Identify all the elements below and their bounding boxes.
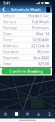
staticText: Total <box>3 61 11 66</box>
button[interactable]: Total <box>0 61 52 67</box>
button[interactable]: Date <box>0 31 52 37</box>
staticText: Visa 4242 <box>33 55 49 60</box>
staticText: Mar 14 <box>36 31 49 36</box>
staticText: 45 min <box>37 49 49 54</box>
staticText: 9:41 <box>3 0 10 6</box>
button[interactable]: Time <box>0 37 52 43</box>
button[interactable]: Offers <box>33 109 44 118</box>
staticText: Honda Civic <box>28 13 49 18</box>
button[interactable]: Book <box>11 109 22 118</box>
button[interactable]: Track <box>22 109 33 118</box>
button[interactable]: Back <box>2 7 6 12</box>
staticText: Time <box>3 37 12 42</box>
staticText: Duration <box>3 49 18 54</box>
staticText: Confirm Booking <box>9 68 43 74</box>
button[interactable]: Service <box>0 19 52 25</box>
staticText: Full Wash <box>32 19 49 24</box>
staticText: $29.00 <box>38 61 49 66</box>
staticText: Address <box>3 43 18 48</box>
button[interactable]: Duration <box>0 49 52 55</box>
staticText: Package <box>3 25 17 30</box>
button[interactable]: Payment <box>0 55 52 61</box>
staticText: Date <box>3 31 11 36</box>
staticText: Premium <box>32 25 49 30</box>
staticText: Service <box>3 19 16 24</box>
staticText: Vehicle <box>3 13 15 18</box>
button[interactable]: Vehicle <box>0 13 52 19</box>
staticText: Payment <box>3 55 18 60</box>
button[interactable]: Confirm Booking <box>2 68 51 74</box>
button[interactable]: Address <box>0 43 52 49</box>
staticText: Schedule Wash <box>11 7 41 12</box>
staticText: 221 Oak St <box>31 43 49 48</box>
button[interactable]: Profile <box>44 109 55 118</box>
button[interactable]: Home <box>0 109 11 118</box>
staticText: 10:30 AM <box>32 37 49 42</box>
button[interactable]: Package <box>0 25 52 31</box>
